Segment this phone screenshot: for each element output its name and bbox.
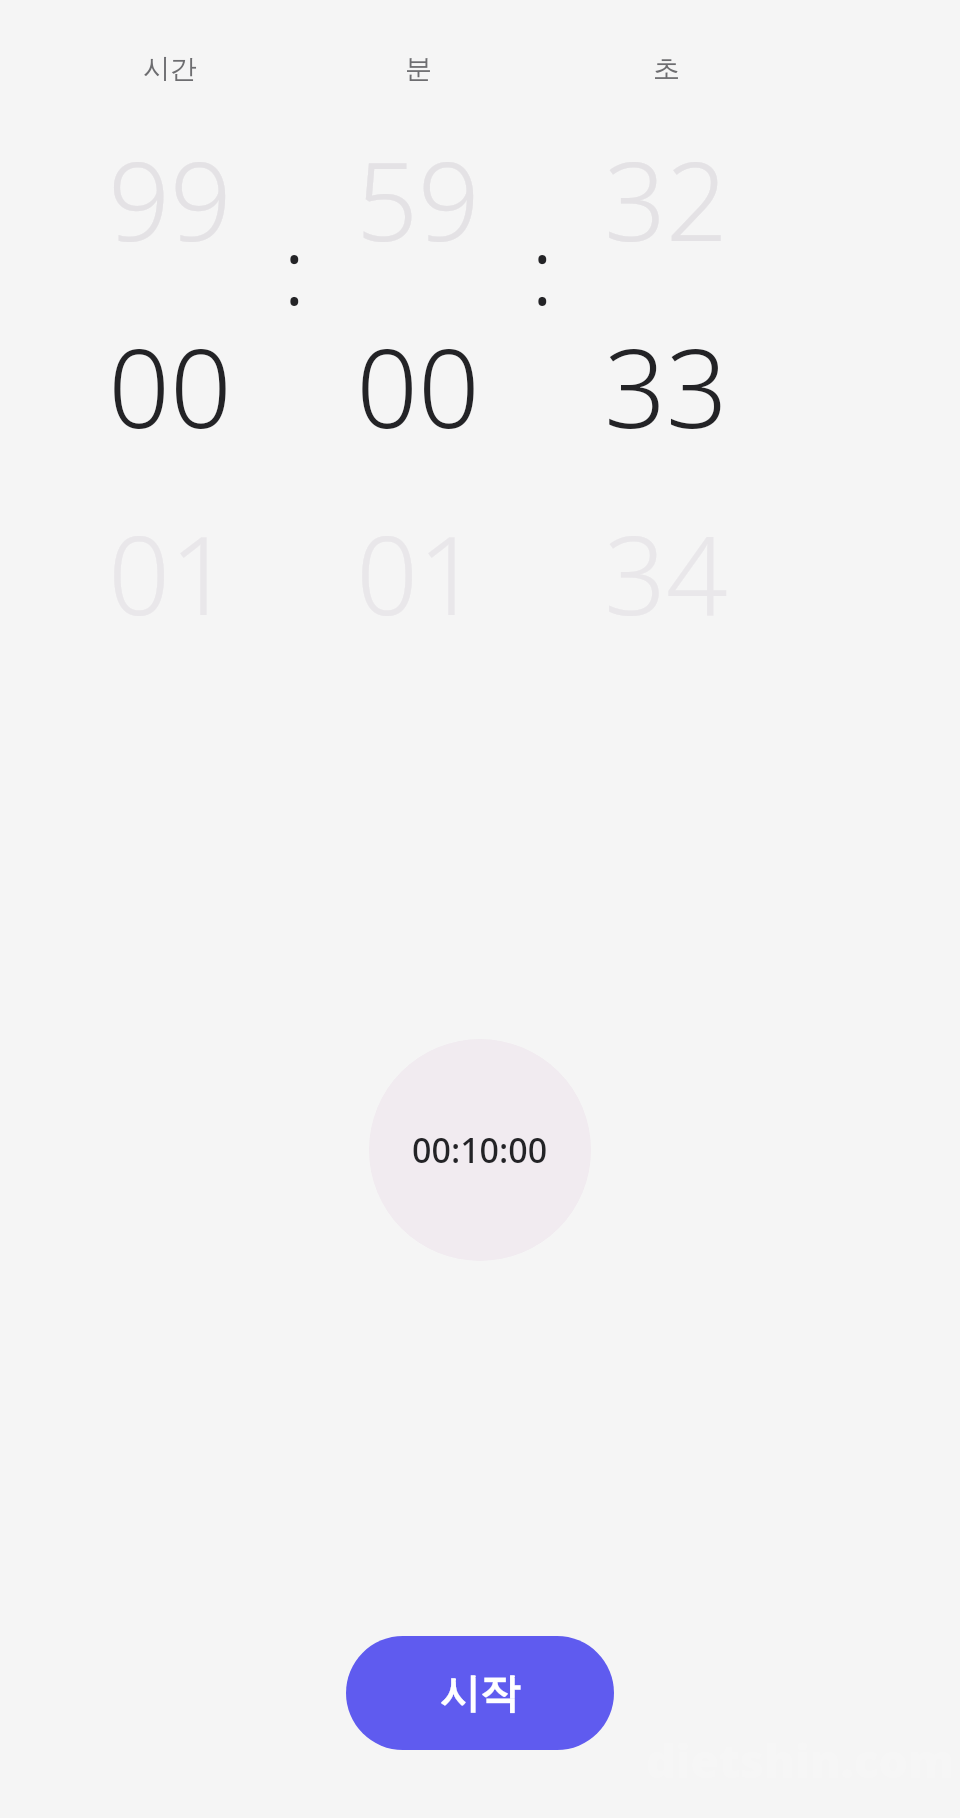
staticText: 01 [108, 500, 232, 647]
staticText: 33 [604, 313, 728, 460]
button[interactable]: 분 [344, 52, 492, 647]
staticText: 32 [604, 126, 728, 273]
staticText: 01 [356, 500, 480, 647]
staticText: : [531, 207, 554, 332]
button[interactable]: 시간 [96, 52, 244, 647]
staticText: 00 [108, 313, 232, 460]
staticText: 34 [604, 500, 728, 647]
button[interactable]: 시작 [346, 1636, 614, 1750]
button[interactable]: 10 minute preset [369, 1039, 591, 1261]
staticText: 99 [108, 126, 232, 273]
staticText: 00 [356, 313, 480, 460]
button[interactable]: 초 [592, 52, 740, 647]
staticText: 분 [405, 52, 432, 86]
staticText: 초 [653, 52, 680, 86]
staticText: : [283, 207, 306, 332]
staticText: 00:10:00 [412, 1127, 548, 1173]
staticText: 시간 [143, 52, 197, 86]
staticText: 59 [356, 126, 480, 273]
staticText: 시작 [440, 1668, 520, 1718]
